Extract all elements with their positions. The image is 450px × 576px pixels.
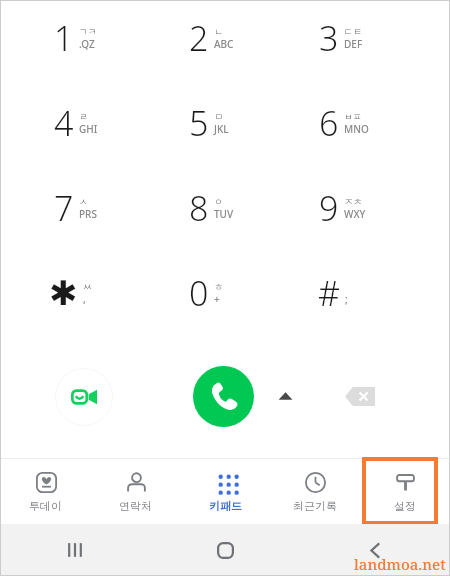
button[interactable]: 2: [158, 0, 278, 80]
staticText: +: [214, 292, 220, 306]
button[interactable]: 0: [158, 251, 278, 335]
staticText: 설정: [394, 499, 416, 513]
button[interactable]: Backspace: [338, 380, 382, 412]
staticText: ㄹ: [79, 111, 88, 122]
staticText: 1: [54, 15, 74, 61]
button[interactable]: Recents: [0, 524, 150, 576]
button[interactable]: 1: [23, 0, 143, 80]
staticText: 9: [319, 185, 339, 231]
button[interactable]: 최근기록: [270, 459, 360, 523]
staticText: 연락처: [119, 499, 152, 513]
staticText: landmoa.net: [354, 554, 446, 574]
staticText: ㅁ: [214, 111, 223, 122]
staticText: ,: [83, 292, 86, 306]
staticText: 투데이: [29, 499, 62, 513]
button[interactable]: Expand: [271, 382, 299, 410]
staticText: WXY: [344, 207, 366, 221]
staticText: 0: [189, 270, 209, 316]
staticText: DEF: [344, 37, 363, 51]
staticText: ㄷㅌ: [344, 26, 362, 37]
staticText: JKL: [214, 122, 229, 136]
button[interactable]: 6: [288, 81, 408, 165]
button[interactable]: Back: [300, 524, 450, 576]
button[interactable]: 키패드: [180, 459, 270, 523]
button[interactable]: ✱: [23, 251, 143, 335]
staticText: ✱: [49, 273, 78, 313]
staticText: ㄱㅋ: [79, 26, 97, 37]
button[interactable]: Call: [193, 366, 254, 427]
button[interactable]: Video call: [55, 368, 113, 426]
staticText: 2: [189, 15, 209, 61]
staticText: .QZ: [79, 37, 95, 51]
staticText: ㅂㅍ: [344, 111, 362, 122]
staticText: 5: [189, 100, 209, 146]
staticText: 8: [189, 185, 209, 231]
staticText: PRS: [79, 207, 97, 221]
button[interactable]: 투데이: [0, 459, 90, 523]
staticText: 키패드: [209, 499, 242, 513]
staticText: 4: [54, 100, 74, 146]
staticText: 최근기록: [293, 499, 337, 513]
staticText: ㄴ: [214, 26, 223, 37]
staticText: ㅈㅊ: [344, 196, 362, 207]
staticText: ㅎ: [214, 281, 223, 292]
staticText: TUV: [214, 207, 234, 221]
button[interactable]: #: [288, 251, 408, 335]
button[interactable]: Home: [150, 524, 300, 576]
staticText: ㅅ: [79, 196, 88, 207]
staticText: MNO: [344, 122, 369, 136]
button[interactable]: 설정: [360, 459, 450, 523]
staticText: GHI: [79, 122, 98, 136]
staticText: ㅆ: [83, 281, 92, 292]
staticText: ㅇ: [214, 196, 223, 207]
button[interactable]: 9: [288, 166, 408, 250]
staticText: 6: [319, 100, 339, 146]
staticText: #: [318, 270, 340, 316]
button[interactable]: 5: [158, 81, 278, 165]
staticText: ABC: [214, 37, 234, 51]
button[interactable]: 7: [23, 166, 143, 250]
button[interactable]: 4: [23, 81, 143, 165]
staticText: 7: [54, 185, 74, 231]
staticText: 3: [319, 15, 339, 61]
button[interactable]: 3: [288, 0, 408, 80]
button[interactable]: 8: [158, 166, 278, 250]
button[interactable]: 연락처: [90, 459, 180, 523]
staticText: ;: [345, 292, 348, 306]
